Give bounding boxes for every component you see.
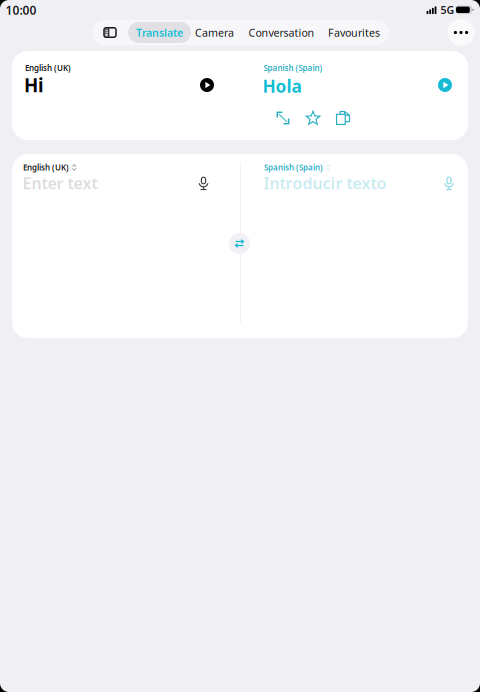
staticText: English (UK) [25,63,71,73]
button[interactable]: Add to favourites [304,109,322,127]
staticText: Spanish (Spain) [263,63,322,73]
staticText: Camera [195,25,234,40]
button[interactable]: Show sidebar [98,22,122,43]
staticText: English (UK) [23,162,69,173]
button[interactable]: Dictate in Spanish [438,172,460,194]
button[interactable]: Spanish (Spain) [264,161,332,173]
button[interactable]: Play Spanish audio [432,72,458,98]
staticText: Translate [136,25,183,40]
button[interactable]: Play English audio [194,72,220,98]
button[interactable]: Favourites [324,22,384,43]
button[interactable]: Copy translation [334,109,352,127]
staticText: 10:00 [5,2,36,18]
button[interactable]: English (UK) [23,161,77,173]
staticText: 5G [440,3,454,17]
staticText: Hola [262,74,301,97]
button[interactable]: Conversation [245,22,317,43]
button[interactable]: More options [447,19,474,46]
staticText: Introducir texto [263,172,386,194]
button[interactable]: Camera [191,22,237,43]
staticText: Hi [24,73,44,97]
staticText: Favourites [328,25,380,40]
button[interactable]: Swap languages [229,233,250,254]
staticText: Spanish (Spain) [264,162,323,173]
staticText: Conversation [248,25,314,40]
button[interactable]: Open full screen [274,109,292,127]
button[interactable]: Translate [128,22,191,43]
button[interactable]: Dictate in English [192,172,214,194]
staticText: Enter text [22,172,97,194]
